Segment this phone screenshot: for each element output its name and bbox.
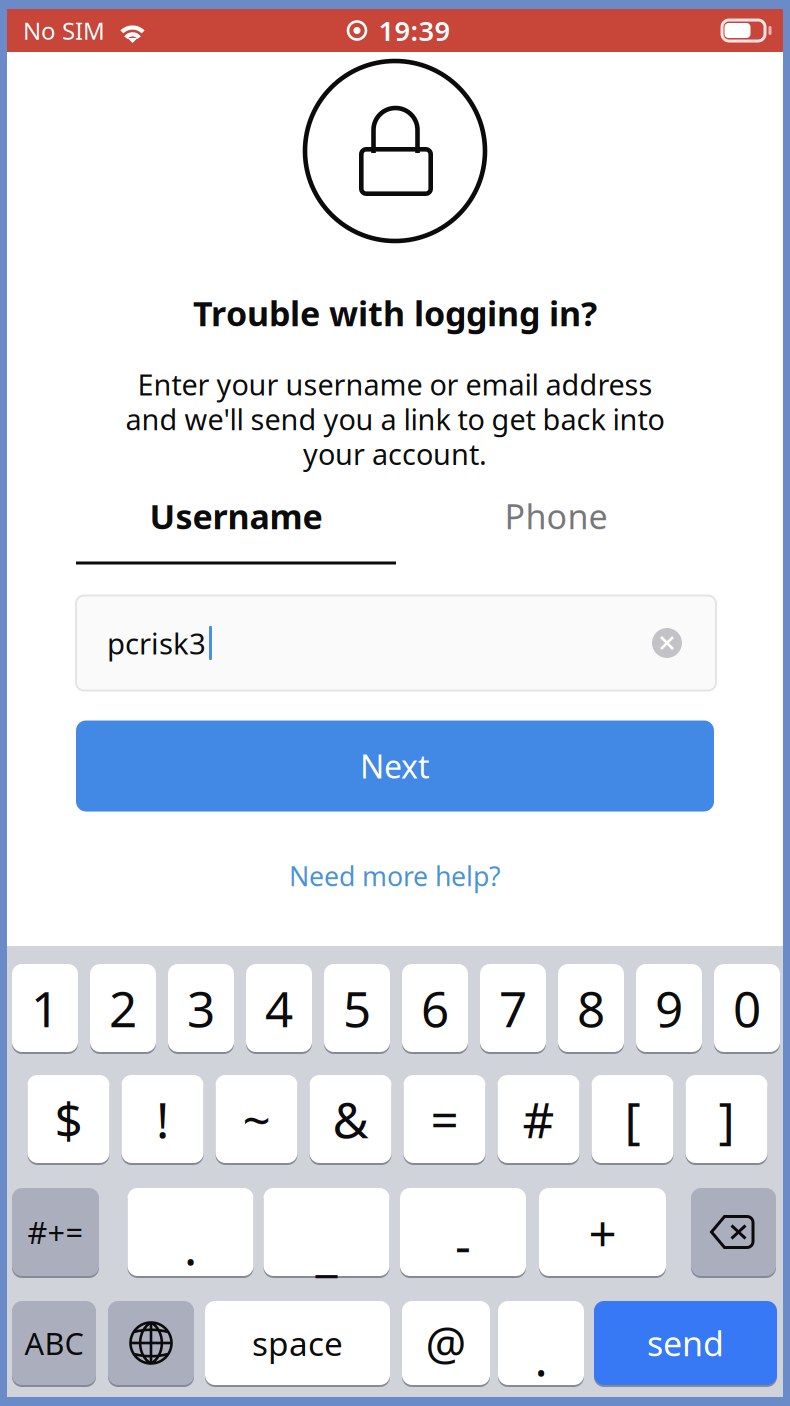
button[interactable]: space [205, 1300, 390, 1386]
staticText: & [332, 1086, 368, 1152]
staticText: ~ [242, 1086, 270, 1152]
button[interactable]: 3 [168, 963, 234, 1053]
staticText: 5 [343, 975, 371, 1041]
button[interactable]: 4 [246, 963, 312, 1053]
staticText: 4 [265, 975, 293, 1041]
button[interactable]: Phone [396, 485, 715, 547]
button[interactable]: ABC [12, 1300, 96, 1386]
staticText: and we'll send you a link to get back in… [125, 400, 664, 438]
staticText: Enter your username or email address [137, 365, 652, 403]
button[interactable]: $ [27, 1074, 109, 1164]
staticText: No SIM [23, 15, 105, 46]
staticText: Trouble with logging in? [193, 290, 597, 336]
staticText: #+= [27, 1212, 83, 1252]
button[interactable]: 7 [480, 963, 546, 1053]
button[interactable]: 5 [324, 963, 390, 1053]
button[interactable]: Next [76, 720, 714, 811]
staticText: ! [156, 1086, 169, 1152]
staticText: 7 [499, 975, 527, 1041]
button[interactable]: 8 [558, 963, 624, 1053]
button[interactable]: = [403, 1074, 485, 1164]
staticText: 6 [421, 975, 449, 1041]
button[interactable]: # [497, 1074, 579, 1164]
staticText: 19:39 [378, 12, 450, 49]
button[interactable]: [ [591, 1074, 673, 1164]
button[interactable]: 1 [12, 963, 78, 1053]
staticText: - [455, 1211, 471, 1277]
button[interactable]: Delete [691, 1187, 776, 1277]
staticText: # [522, 1086, 554, 1152]
staticText: $ [54, 1086, 82, 1152]
staticText: your account. [303, 435, 487, 473]
button[interactable]: #+= [12, 1187, 99, 1277]
staticText: = [430, 1086, 458, 1152]
button[interactable]: 2 [90, 963, 156, 1053]
staticText: . [534, 1324, 547, 1390]
button[interactable]: ! [121, 1074, 203, 1164]
button[interactable]: . [127, 1187, 253, 1277]
staticText: send [647, 1320, 724, 1366]
button[interactable]: Need more help? [245, 850, 545, 902]
staticText: ] [718, 1086, 734, 1152]
button[interactable]: & [309, 1074, 391, 1164]
button[interactable]: . [498, 1300, 584, 1386]
button[interactable]: ~ [215, 1074, 297, 1164]
staticText: _ [315, 1218, 337, 1284]
button[interactable]: 9 [636, 963, 702, 1053]
button[interactable]: _ [263, 1187, 389, 1277]
staticText: Phone [504, 493, 607, 539]
button[interactable]: send [594, 1300, 777, 1386]
staticText: Need more help? [289, 858, 501, 894]
staticText: + [588, 1199, 616, 1265]
staticText: 9 [655, 975, 683, 1041]
staticText: pcrisk3 [107, 623, 206, 662]
button[interactable]: 6 [402, 963, 468, 1053]
button[interactable]: + [539, 1187, 666, 1277]
staticText: 2 [109, 975, 137, 1041]
button[interactable]: Username [76, 485, 395, 547]
staticText: space [252, 1321, 343, 1365]
button[interactable]: - [400, 1187, 526, 1277]
staticText: 8 [577, 975, 605, 1041]
staticText: Username [149, 493, 322, 539]
staticText: 0 [733, 975, 761, 1041]
staticText: Next [360, 745, 430, 787]
button[interactable]: Next keyboard [108, 1300, 194, 1386]
button[interactable]: ] [685, 1074, 767, 1164]
button[interactable]: @ [402, 1300, 490, 1386]
staticText: 3 [187, 975, 215, 1041]
staticText: @ [425, 1313, 466, 1373]
staticText: [ [624, 1086, 640, 1152]
staticText: ABC [24, 1323, 83, 1363]
staticText: 1 [31, 975, 59, 1041]
staticText: . [184, 1213, 197, 1279]
button[interactable]: Clear text [643, 613, 691, 673]
button[interactable]: 0 [714, 963, 780, 1053]
